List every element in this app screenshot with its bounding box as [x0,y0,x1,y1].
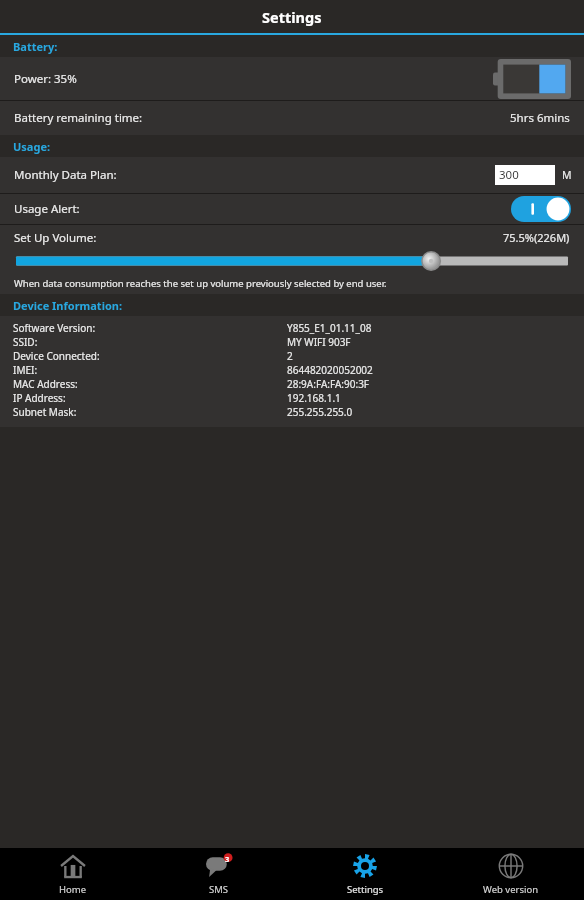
staticText: 2 [287,349,293,363]
button[interactable]: Settings [292,848,438,896]
staticText: Home [59,883,87,896]
staticText: Device Connected: [13,349,100,363]
staticText: IP Address: [13,391,66,405]
button[interactable]: 300 [495,165,555,185]
button[interactable] [0,250,584,272]
other: SMS, 3 unread [206,853,232,879]
staticText: Battery remaining time: [14,110,143,126]
staticText: 3 [225,854,230,864]
staticText: Battery: [13,39,58,54]
staticText: Usage: [13,139,51,154]
staticText: 5hrs 6mins [510,110,570,126]
staticText: 28:9A:FA:FA:90:3F [287,377,370,391]
staticText: SSID: [13,335,38,349]
staticText: Web version [483,883,539,896]
button[interactable]: Monthly Data Plan: [0,157,584,193]
other: Web version [498,853,524,879]
staticText: IMEI: [13,363,38,377]
button[interactable]: Home [0,848,146,896]
staticText: Subnet Mask: [13,405,77,419]
staticText: M [562,168,572,182]
staticText: 192.168.1.1 [287,391,341,405]
staticText: Y855_E1_01.11_08 [287,321,372,335]
button[interactable]: Web version [438,848,584,896]
button[interactable]: SMS, 3 unread [146,848,292,896]
staticText: Software Version: [13,321,96,335]
staticText: Device Information: [13,298,123,313]
staticText: SMS [209,883,229,896]
button[interactable]: MAC Address: [0,377,584,391]
button[interactable]: Usage Alert: [0,194,584,224]
button[interactable]: IP Address: [0,391,584,405]
other: Battery level 35 percent [493,59,571,99]
button[interactable]: SSID: [0,335,584,349]
staticText: 75.5%(226M) [503,230,570,245]
button[interactable]: Device Connected: [0,349,584,363]
staticText: MAC Address: [13,377,78,391]
other: Settings [352,853,378,879]
button[interactable]: Usage alert toggle [511,196,571,222]
staticText: 255.255.255.0 [287,405,353,419]
staticText: Set Up Volume: [14,230,97,246]
staticText: 864482020052002 [287,363,373,377]
staticText: When data consumption reaches the set up… [14,277,387,290]
staticText: Settings [262,7,322,27]
staticText: Usage Alert: [14,201,80,217]
staticText: Settings [347,883,384,896]
button[interactable]: IMEI: [0,363,584,377]
button[interactable]: Power: 35% [0,57,584,100]
button[interactable]: Battery remaining time: [0,101,584,135]
button[interactable]: Subnet Mask: [0,405,584,419]
staticText: 300 [499,167,519,183]
staticText: Monthly Data Plan: [14,167,117,183]
staticText: MY WIFI 903F [287,335,351,349]
button[interactable]: Software Version: [0,321,584,335]
staticText: Power: 35% [14,71,77,87]
